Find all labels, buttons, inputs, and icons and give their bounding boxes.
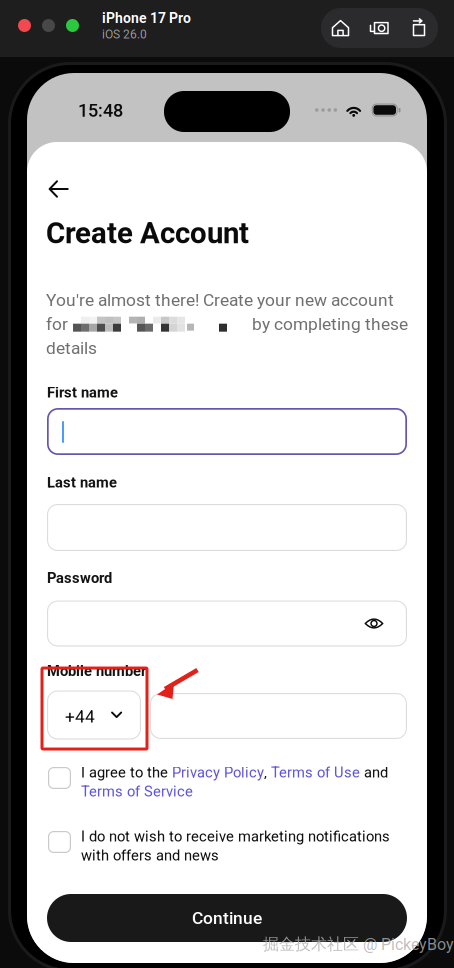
staticText: Last name <box>47 474 117 491</box>
staticText: and <box>360 764 388 781</box>
staticText: 掘金技术社区 @ PickeyBoy <box>263 934 454 954</box>
staticText: with offers and news <box>81 847 219 864</box>
staticText: Continue <box>192 908 262 928</box>
staticText: by completing these <box>252 314 408 334</box>
staticText: iOS 26.0 <box>102 27 147 41</box>
staticText: , <box>264 764 271 781</box>
button[interactable]: +44 <box>47 690 141 739</box>
staticText: 15:48 <box>78 100 123 121</box>
staticText: iPhone 17 Pro <box>102 10 191 26</box>
staticText: +44 <box>65 706 95 727</box>
button[interactable]: Screenshot <box>360 8 399 48</box>
button[interactable]: Back <box>38 173 79 205</box>
staticText: Create Account <box>46 216 249 250</box>
button[interactable]: Home <box>321 8 360 48</box>
button[interactable]: I agree to the <box>47 764 407 806</box>
staticText: for <box>46 314 72 334</box>
staticText: I agree to the <box>81 764 172 781</box>
button[interactable]: Show password <box>354 603 394 643</box>
staticText: Mobile number <box>47 662 146 680</box>
staticText: Password <box>47 569 112 587</box>
staticText: First name <box>47 384 118 401</box>
button[interactable]: Rotate <box>399 8 438 48</box>
button[interactable]: I do not wish to receive marketing notif… <box>47 828 407 870</box>
staticText: Terms of Service <box>81 783 193 800</box>
button[interactable]: Continue <box>47 894 407 942</box>
staticText: I do not wish to receive marketing notif… <box>81 828 390 845</box>
staticText: Terms of Use <box>271 764 360 781</box>
staticText: details <box>46 338 97 358</box>
staticText: Privacy Policy <box>172 764 264 781</box>
staticText: You're almost there! Create your new acc… <box>46 290 394 310</box>
